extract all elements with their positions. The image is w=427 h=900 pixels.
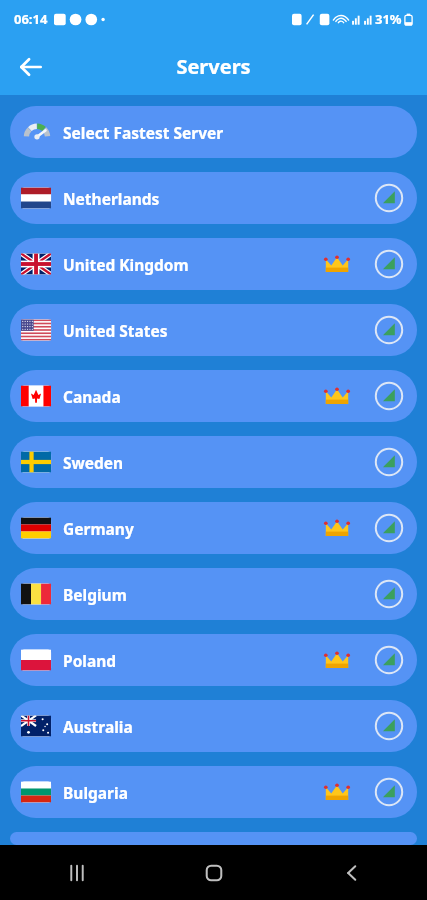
- button[interactable]: Germany: [10, 502, 417, 554]
- button[interactable]: Canada: [10, 370, 417, 422]
- button[interactable]: Select Fastest Server: [10, 106, 417, 158]
- staticText: 06:14: [14, 10, 48, 28]
- button[interactable]: Belgium: [10, 568, 417, 620]
- button[interactable]: United Kingdom: [10, 238, 417, 290]
- button[interactable]: Australia: [10, 700, 417, 752]
- button[interactable]: United States: [10, 304, 417, 356]
- button[interactable]: [10, 832, 417, 845]
- staticText: Servers: [176, 53, 251, 80]
- staticText: Canada: [63, 386, 121, 407]
- staticText: Australia: [63, 716, 133, 737]
- button[interactable]: Bulgaria: [10, 766, 417, 818]
- button[interactable]: Poland: [10, 634, 417, 686]
- staticText: 31%: [375, 10, 402, 28]
- staticText: Germany: [63, 518, 134, 539]
- staticText: United States: [63, 320, 168, 341]
- button[interactable]: Netherlands: [10, 172, 417, 224]
- button[interactable]: Home: [154, 845, 274, 900]
- button[interactable]: Back: [290, 845, 410, 900]
- staticText: Bulgaria: [63, 782, 128, 803]
- staticText: Sweden: [63, 452, 124, 473]
- staticText: Netherlands: [63, 188, 160, 209]
- staticText: Poland: [63, 650, 117, 671]
- button[interactable]: Back: [9, 45, 53, 89]
- staticText: Belgium: [63, 584, 127, 605]
- staticText: Select Fastest Server: [63, 122, 224, 143]
- button[interactable]: Recent apps: [17, 845, 137, 900]
- staticText: United Kingdom: [63, 254, 189, 275]
- button[interactable]: Sweden: [10, 436, 417, 488]
